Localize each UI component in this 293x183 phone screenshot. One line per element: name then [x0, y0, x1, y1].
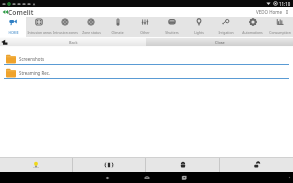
- staticText: Zone status: [82, 30, 101, 35]
- button[interactable]: Gate: [73, 158, 145, 172]
- staticText: Shutters: [165, 30, 179, 35]
- button[interactable]: Other: [131, 17, 158, 37]
- staticText: Close: [215, 40, 225, 45]
- staticText: Comelit: [8, 8, 34, 17]
- button[interactable]: Automations: [239, 17, 266, 37]
- button[interactable]: Climate: [104, 17, 131, 37]
- staticText: Intrusion areas: [27, 30, 52, 35]
- staticText: VEDO Home: [256, 9, 282, 15]
- button[interactable]: Consumption: [266, 17, 293, 37]
- button[interactable]: More options: [284, 9, 290, 15]
- staticText: Irrigation: [218, 30, 234, 35]
- button[interactable]: Streaming Rec.: [0, 67, 293, 81]
- button[interactable]: Up one level: [1, 39, 8, 46]
- button[interactable]: Intrusion zones: [52, 17, 78, 37]
- button[interactable]: Back: [2, 9, 8, 15]
- staticText: Lights: [194, 30, 204, 35]
- button[interactable]: Irrigation: [212, 17, 239, 37]
- staticText: HOME: [8, 30, 19, 35]
- button[interactable]: Close: [146, 38, 293, 46]
- staticText: Other: [140, 30, 150, 35]
- button[interactable]: Unlock: [220, 158, 293, 172]
- button[interactable]: Home: [140, 172, 154, 183]
- staticText: Climate: [111, 30, 124, 35]
- button[interactable]: Shutters: [158, 17, 185, 37]
- button[interactable]: Back: [0, 38, 146, 46]
- staticText: Screenshots: [19, 56, 45, 62]
- staticText: Streaming Rec.: [19, 70, 50, 76]
- button[interactable]: Lights: [185, 17, 212, 37]
- button[interactable]: Screenshots: [0, 53, 293, 67]
- staticText: Automations: [242, 30, 263, 35]
- button[interactable]: Recents: [177, 172, 191, 183]
- button[interactable]: Zone status: [78, 17, 104, 37]
- staticText: Intrusion zones: [53, 30, 78, 35]
- button[interactable]: Intrusion areas: [26, 17, 52, 37]
- staticText: Back: [69, 40, 78, 45]
- staticText: Consumption: [269, 30, 291, 35]
- button[interactable]: Light: [0, 158, 72, 172]
- button[interactable]: Back: [100, 172, 114, 183]
- button[interactable]: HOME: [0, 17, 26, 37]
- button[interactable]: Lock: [146, 158, 219, 172]
- staticText: 11:10: [279, 1, 291, 7]
